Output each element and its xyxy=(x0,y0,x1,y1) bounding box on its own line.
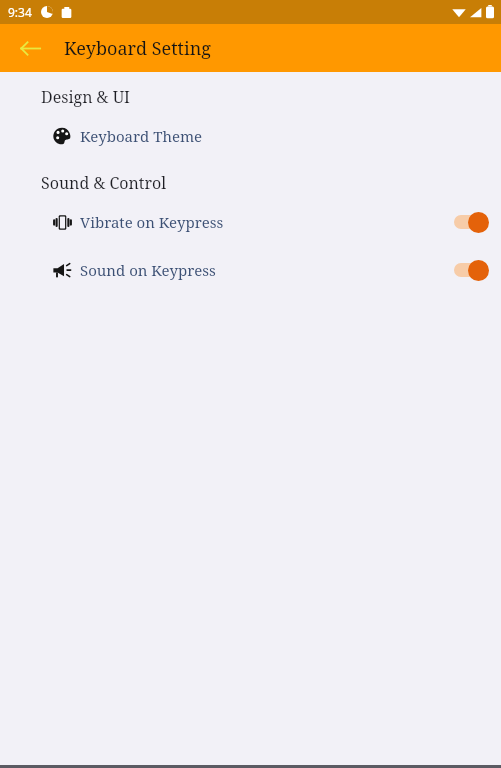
staticText: Keyboard Theme xyxy=(80,126,203,146)
button[interactable]: Vibrate on Keypress xyxy=(0,202,501,242)
button[interactable] xyxy=(453,211,489,233)
staticText: Design & UI xyxy=(41,86,130,108)
button[interactable]: Sound on Keypress xyxy=(0,250,501,290)
button[interactable] xyxy=(453,259,489,281)
staticText: Vibrate on Keypress xyxy=(80,212,224,232)
button[interactable]: Back xyxy=(10,28,50,68)
staticText: Sound on Keypress xyxy=(80,260,216,280)
staticText: Keyboard Setting xyxy=(64,36,211,61)
button[interactable]: Keyboard Theme xyxy=(0,116,501,156)
staticText: Sound & Control xyxy=(41,172,167,194)
staticText: 9:34 xyxy=(8,4,32,20)
